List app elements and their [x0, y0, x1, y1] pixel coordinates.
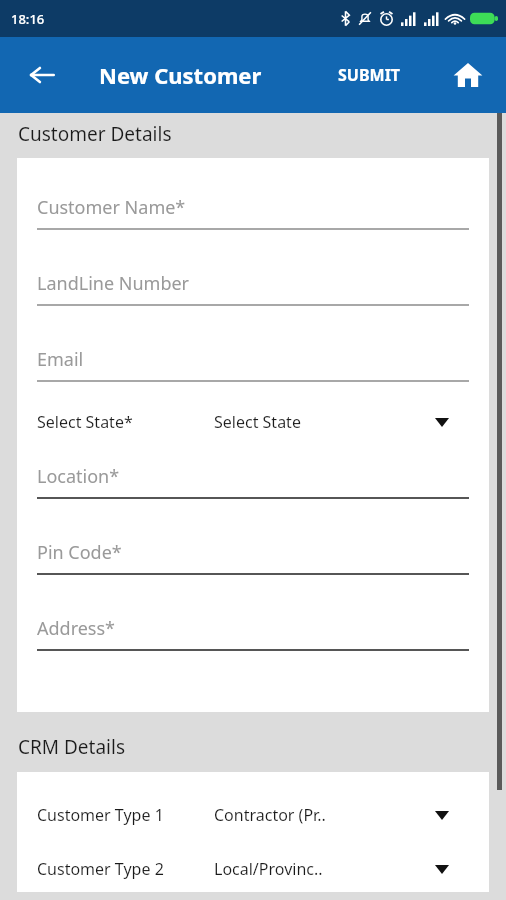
staticText: Customer Type 2 — [37, 858, 214, 880]
button[interactable]: Email — [37, 347, 469, 382]
button[interactable]: Address* — [37, 616, 469, 651]
staticText: Customer Details — [18, 121, 172, 147]
button[interactable]: Home — [444, 51, 492, 99]
staticText: 18:16 — [11, 10, 45, 28]
staticText: Select State — [214, 411, 435, 433]
button[interactable]: Pin Code* — [37, 540, 469, 575]
staticText: Address* — [37, 616, 116, 641]
staticText: Customer Name* — [37, 195, 186, 220]
staticText: Customer Type 1 — [37, 804, 214, 826]
button[interactable]: Customer Type 2 — [17, 852, 489, 886]
staticText: Pin Code* — [37, 540, 122, 565]
button[interactable]: SUBMIT — [330, 54, 409, 96]
staticText: Select State* — [37, 411, 214, 433]
staticText: Contractor (Pr.. — [214, 804, 435, 826]
button[interactable]: Customer Name* — [37, 195, 469, 230]
button[interactable]: Customer Type 1 — [17, 798, 489, 832]
staticText: New Customer — [99, 60, 262, 90]
button[interactable]: Back — [18, 51, 66, 99]
staticText: Email — [37, 347, 84, 372]
staticText: CRM Details — [18, 734, 126, 760]
staticText: LandLine Number — [37, 271, 190, 296]
button[interactable]: Select State* — [17, 405, 489, 439]
button[interactable]: LandLine Number — [37, 271, 469, 306]
staticText: SUBMIT — [338, 64, 401, 86]
staticText: Location* — [37, 464, 120, 489]
button[interactable]: Location* — [37, 464, 469, 499]
staticText: Local/Provinc.. — [214, 858, 435, 880]
